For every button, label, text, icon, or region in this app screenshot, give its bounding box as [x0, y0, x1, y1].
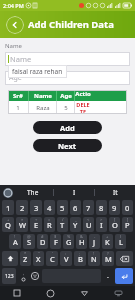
- button[interactable]: (: [115, 234, 126, 249]
- button[interactable]: Shift: [2, 251, 18, 266]
- staticText: E: [34, 220, 39, 230]
- staticText: Add: [60, 123, 75, 133]
- button[interactable]: /: [57, 217, 68, 232]
- staticText: ": [38, 251, 40, 256]
- staticText: -: [94, 234, 96, 239]
- button[interactable]: 1: [2, 200, 14, 215]
- button[interactable]: ': [46, 251, 58, 266]
- staticText: A: [13, 237, 18, 247]
- staticText: 6: [73, 203, 78, 213]
- button[interactable]: Voice: [2, 187, 13, 198]
- staticText: F: [54, 237, 58, 247]
- button[interactable]: Age: [5, 71, 130, 85]
- button[interactable]: $: [50, 234, 61, 249]
- button[interactable]: [: [109, 217, 120, 232]
- button[interactable]: =: [44, 217, 55, 232]
- button[interactable]: Hide keyboard: [101, 286, 135, 300]
- button[interactable]: <: [83, 217, 94, 232]
- button[interactable]: +: [2, 217, 14, 232]
- button[interactable]: DELETE: [75, 101, 91, 114]
- button[interactable]: Emoji: [29, 267, 41, 285]
- staticText: O: [112, 220, 118, 230]
- button[interactable]: >: [96, 217, 107, 232]
- staticText: T: [60, 220, 65, 230]
- staticText: (: [120, 234, 122, 239]
- staticText: &: [80, 234, 83, 239]
- button[interactable]: %: [63, 234, 74, 249]
- button[interactable]: 7: [83, 200, 94, 215]
- staticText: :: [65, 251, 67, 256]
- button[interactable]: ÷: [30, 217, 42, 232]
- button[interactable]: Backspace: [116, 251, 133, 266]
- staticText: ': [52, 251, 53, 256]
- staticText: 8: [99, 203, 104, 213]
- button[interactable]: .: [102, 267, 114, 285]
- button[interactable]: 123: [2, 268, 16, 284]
- staticText: D: [40, 237, 46, 247]
- staticText: 1: [16, 104, 20, 112]
- staticText: 2: [20, 203, 25, 213]
- staticText: X: [36, 254, 41, 264]
- staticText: I: [100, 220, 103, 230]
- staticText: 7: [86, 203, 91, 213]
- button[interactable]: Add: [33, 121, 102, 134]
- button[interactable]: Recents: [0, 286, 33, 300]
- button[interactable]: !: [88, 251, 100, 266]
- staticText: C: [50, 254, 55, 264]
- staticText: 1: [6, 203, 11, 213]
- staticText: $: [54, 234, 57, 239]
- button[interactable]: Enter: [115, 268, 133, 284]
- button[interactable]: I: [54, 185, 94, 199]
- button[interactable]: The: [13, 185, 53, 199]
- staticText: !: [14, 234, 16, 239]
- button[interactable]: ×: [16, 217, 28, 232]
- button[interactable]: Back: [6, 16, 24, 34]
- staticText: [: [114, 217, 116, 222]
- staticText: ÷: [35, 217, 38, 222]
- staticText: <: [87, 217, 90, 222]
- button[interactable]: 4: [44, 200, 55, 215]
- button[interactable]: 3: [30, 200, 42, 215]
- staticText: ;: [79, 251, 81, 256]
- button[interactable]: faisal raza rehan: [8, 65, 67, 78]
- staticText: S: [27, 237, 32, 247]
- staticText: Q: [5, 220, 11, 230]
- staticText: P: [125, 220, 130, 230]
- button[interactable]: :: [60, 251, 72, 266]
- button[interactable]: Next: [33, 139, 102, 152]
- staticText: 9: [112, 203, 117, 213]
- button[interactable]: ?: [102, 251, 114, 266]
- button[interactable]: +: [102, 234, 113, 249]
- button[interactable]: -: [89, 234, 100, 249]
- button[interactable]: _: [70, 217, 81, 232]
- staticText: _: [75, 217, 77, 222]
- button[interactable]: 9: [109, 200, 120, 215]
- button[interactable]: ": [33, 251, 44, 266]
- staticText: 3: [34, 203, 39, 213]
- button[interactable]: 6: [70, 200, 81, 215]
- staticText: Action: [75, 90, 91, 101]
- button[interactable]: ;: [74, 251, 86, 266]
- button[interactable]: @: [23, 234, 35, 249]
- button[interactable]: Settings: [17, 267, 29, 285]
- button[interactable]: !: [9, 234, 21, 249]
- button[interactable]: #: [37, 234, 48, 249]
- button[interactable]: 2: [16, 200, 28, 215]
- button[interactable]: 5: [57, 200, 68, 215]
- staticText: 4: [47, 203, 52, 213]
- button[interactable]: &: [76, 234, 87, 249]
- button[interactable]: Home: [33, 286, 67, 300]
- staticText: Y: [73, 220, 78, 230]
- staticText: 0: [125, 203, 130, 213]
- staticText: N: [91, 254, 97, 264]
- button[interactable]: It: [95, 185, 135, 199]
- button[interactable]: 0: [122, 200, 133, 215]
- button[interactable]: *: [20, 251, 31, 266]
- staticText: ]: [127, 217, 129, 222]
- staticText: +: [106, 234, 109, 239]
- button[interactable]: Name: [5, 52, 130, 66]
- button[interactable]: ]: [122, 217, 133, 232]
- button[interactable]: Back: [67, 286, 101, 300]
- button[interactable]: 8: [96, 200, 107, 215]
